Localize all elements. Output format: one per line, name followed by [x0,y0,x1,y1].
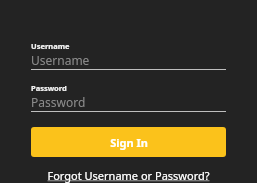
button[interactable]: Username [31,52,226,70]
button[interactable]: Password [31,94,226,112]
staticText: Forgot Username or Password? [47,168,210,183]
staticText: Password [31,94,86,110]
staticText: Username [31,52,90,68]
staticText: Sign In [110,135,148,150]
button[interactable]: Forgot Username or Password? [31,168,226,183]
staticText: Password [31,83,67,93]
button[interactable]: Sign In [31,127,226,157]
staticText: Username [31,41,70,51]
